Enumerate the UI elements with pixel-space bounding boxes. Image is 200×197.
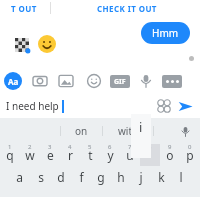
button[interactable]: Gallery — [57, 72, 75, 90]
button[interactable]: p — [180, 144, 200, 166]
button[interactable] — [154, 118, 200, 144]
staticText: CHECK IT OUT — [97, 3, 157, 14]
staticText: Aa — [8, 76, 19, 87]
staticText: f — [79, 169, 84, 185]
staticText: d — [57, 169, 65, 185]
staticText: 7 — [128, 143, 132, 151]
staticText: a — [16, 169, 23, 185]
staticText: GIF — [114, 77, 126, 87]
staticText: j — [139, 169, 143, 185]
staticText: i — [139, 118, 143, 136]
staticText: 3 — [48, 143, 52, 151]
button[interactable]: on — [61, 118, 102, 144]
button[interactable]: q — [0, 144, 20, 166]
button[interactable]: GIF — [110, 75, 130, 88]
staticText: T OUT — [11, 3, 37, 14]
button[interactable]: Voice message — [137, 72, 155, 90]
staticText: p — [186, 147, 194, 163]
button[interactable]: Text formatting — [4, 72, 22, 90]
button[interactable]: Profile — [15, 38, 29, 52]
staticText: t — [88, 147, 93, 163]
button[interactable]: k — [151, 166, 171, 188]
staticText: 0 — [188, 143, 192, 151]
staticText: 4 — [68, 143, 72, 151]
staticText: o — [166, 147, 174, 163]
button[interactable]: CHECK IT OUT — [82, 0, 172, 16]
staticText: 8 — [148, 143, 152, 151]
button[interactable]: j — [131, 166, 151, 188]
staticText: w — [25, 147, 35, 163]
button[interactable]: s — [30, 166, 51, 188]
button[interactable]: Emoji — [85, 72, 103, 90]
button[interactable]: Send — [176, 97, 194, 115]
staticText: g — [97, 169, 105, 185]
staticText: h — [117, 169, 125, 185]
staticText: 1 — [8, 143, 12, 151]
staticText: 6 — [108, 143, 112, 151]
button[interactable]: T OUT — [0, 0, 48, 16]
staticText: u — [126, 147, 134, 163]
button[interactable]: a — [9, 166, 30, 188]
button[interactable]: d — [51, 166, 71, 188]
staticText: e — [47, 147, 54, 163]
button[interactable]: 8 — [140, 144, 160, 166]
staticText: y — [107, 147, 114, 163]
staticText: r — [68, 147, 73, 163]
button[interactable]: l — [171, 166, 191, 188]
button[interactable]: r — [60, 144, 80, 166]
staticText: 9 — [168, 143, 172, 151]
button[interactable]: h — [111, 166, 131, 188]
button[interactable]: o — [160, 144, 180, 166]
staticText: 2 — [28, 143, 32, 151]
staticText: s — [38, 169, 44, 185]
staticText: q — [6, 147, 14, 163]
staticText: with — [118, 124, 139, 138]
button[interactable]: Camera — [31, 72, 49, 90]
button[interactable]: More options — [162, 75, 182, 88]
button[interactable]: e — [40, 144, 60, 166]
button[interactable]: Emoji reaction — [38, 35, 56, 53]
staticText: 5 — [88, 143, 92, 151]
button[interactable]: Voice input — [178, 124, 192, 138]
staticText: Hmm — [152, 26, 179, 40]
staticText: l — [179, 169, 183, 185]
button[interactable]: g — [91, 166, 111, 188]
button[interactable]: f — [71, 166, 91, 188]
button[interactable]: with — [103, 118, 153, 144]
button[interactable]: Hmm — [141, 22, 190, 44]
staticText: k — [158, 169, 165, 185]
button[interactable]: Stickers — [156, 98, 172, 114]
button[interactable]: u — [120, 144, 140, 166]
button[interactable]: w — [20, 144, 40, 166]
button[interactable]: y — [100, 144, 120, 166]
staticText: on — [75, 124, 88, 138]
staticText: I need help — [6, 99, 59, 113]
button[interactable]: t — [80, 144, 100, 166]
